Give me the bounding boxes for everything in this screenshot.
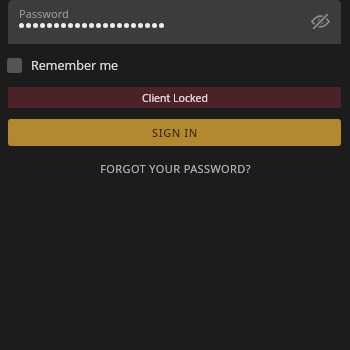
button[interactable]: SIGN IN <box>8 119 341 146</box>
staticText: Password <box>19 6 69 21</box>
button[interactable]: Show password <box>307 8 333 34</box>
staticText: Remember me <box>31 57 119 74</box>
button[interactable]: Password <box>8 0 341 44</box>
button[interactable]: Remember me <box>7 54 119 76</box>
button[interactable]: FORGOT YOUR PASSWORD? <box>100 161 251 176</box>
staticText: FORGOT YOUR PASSWORD? <box>100 161 251 176</box>
staticText: SIGN IN <box>152 125 198 140</box>
button[interactable]: Client Locked <box>8 87 341 108</box>
staticText: Client Locked <box>142 91 208 105</box>
